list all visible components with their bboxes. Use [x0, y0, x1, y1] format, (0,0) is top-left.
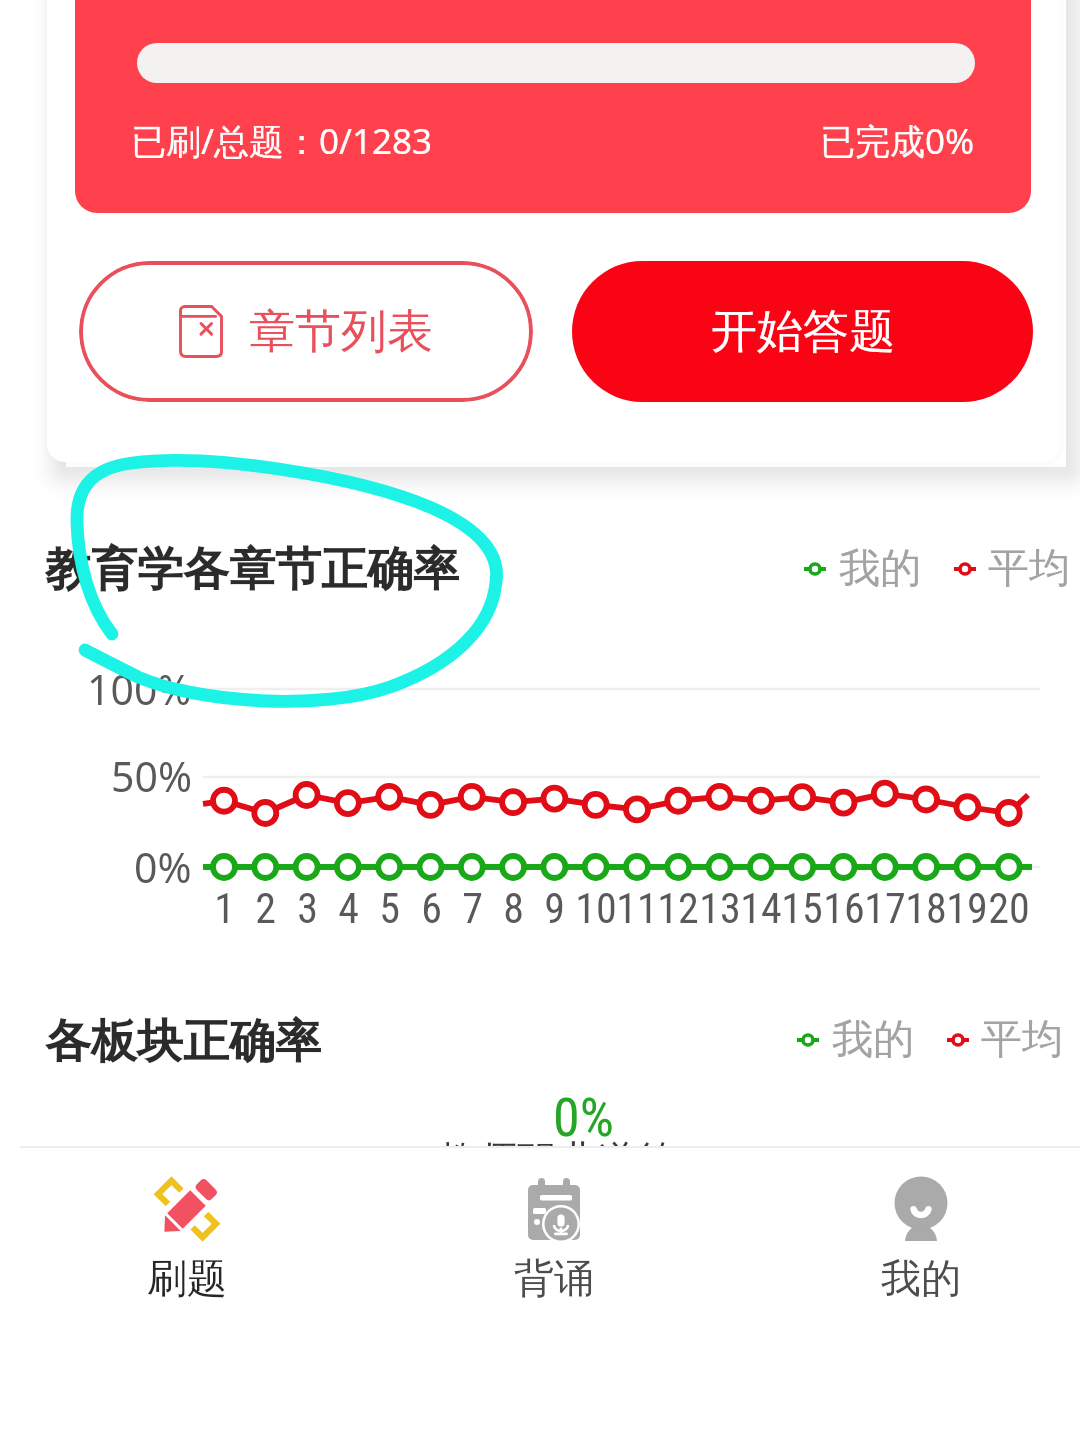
- staticText: 2: [255, 884, 276, 933]
- staticText: 我的: [881, 1253, 961, 1303]
- staticText: 100%: [87, 661, 192, 717]
- button[interactable]: 章节列表: [79, 261, 533, 402]
- button[interactable]: 我的: [741, 1148, 1080, 1308]
- staticText: 3: [297, 884, 318, 933]
- staticText: 5: [379, 884, 400, 933]
- staticText: 20: [988, 884, 1030, 933]
- staticText: 18: [905, 884, 947, 933]
- staticText: 9: [544, 884, 565, 933]
- staticText: 已完成0%: [820, 117, 975, 165]
- staticText: 1: [214, 884, 235, 933]
- staticText: 教育学各章节正确率: [45, 541, 459, 599]
- button[interactable]: 刷题: [7, 1148, 367, 1308]
- staticText: 8: [503, 884, 524, 933]
- staticText: 各板块正确率: [45, 1013, 321, 1071]
- staticText: 刷题: [147, 1253, 227, 1303]
- staticText: 0%: [134, 839, 192, 895]
- staticText: 我的: [839, 543, 921, 595]
- button[interactable]: 背诵: [374, 1148, 734, 1308]
- staticText: 0%: [553, 1086, 614, 1149]
- staticText: 11: [616, 884, 658, 933]
- staticText: 16: [823, 884, 865, 933]
- staticText: 13: [699, 884, 741, 933]
- staticText: 开始答题: [711, 303, 895, 361]
- staticText: 平均: [988, 543, 1070, 595]
- staticText: 背诵: [514, 1253, 594, 1303]
- staticText: 12: [657, 884, 699, 933]
- staticText: 50%: [111, 748, 192, 804]
- staticText: 章节列表: [249, 303, 433, 361]
- staticText: 教师职业道德: [437, 1135, 677, 1185]
- staticText: 14: [740, 884, 782, 933]
- staticText: 7: [462, 884, 483, 933]
- staticText: 平均: [981, 1014, 1063, 1066]
- staticText: 15: [781, 884, 823, 933]
- button[interactable]: 开始答题: [572, 261, 1033, 402]
- staticText: 6: [421, 884, 442, 933]
- staticText: 19: [946, 884, 988, 933]
- staticText: 17: [864, 884, 906, 933]
- staticText: 我的: [832, 1014, 914, 1066]
- staticText: 已刷/总题：0/1283: [131, 117, 433, 165]
- staticText: 10: [575, 884, 617, 933]
- staticText: 4: [338, 884, 359, 933]
